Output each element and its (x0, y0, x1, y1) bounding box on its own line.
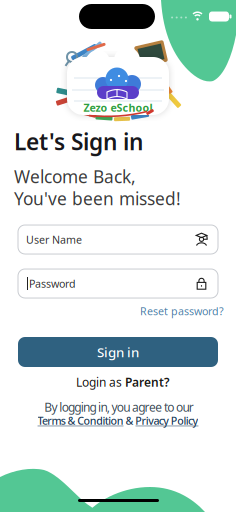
staticText: Password (29, 276, 76, 291)
staticText: By logging in, you agree to our (44, 399, 194, 415)
button[interactable]: User Name (18, 225, 218, 254)
staticText: Login as Parent? (76, 374, 170, 390)
button[interactable]: Reset password? (140, 304, 224, 318)
button[interactable]: Login as Parent? (76, 374, 170, 390)
staticText: You've been missed! (14, 187, 181, 210)
button[interactable]: Sign in (18, 337, 218, 367)
staticText: Sign in (97, 343, 139, 361)
staticText: Reset password? (140, 304, 224, 318)
staticText: User Name (26, 232, 82, 247)
staticText: Let's Sign in (14, 126, 143, 156)
staticText: Terms & Condition & Privacy Policy (38, 413, 198, 428)
button[interactable]: Password (18, 269, 218, 298)
staticText: Zezo eSchool (83, 100, 152, 115)
staticText: Welcome Back, (14, 165, 136, 188)
button[interactable]: Terms & Condition & Privacy Policy (38, 413, 198, 428)
